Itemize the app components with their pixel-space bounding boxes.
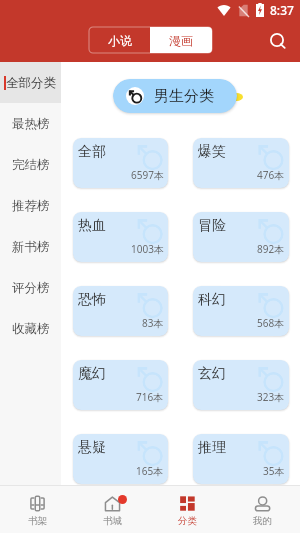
button[interactable]: 科幻 [193, 286, 289, 336]
staticText: 科幻 [198, 291, 226, 309]
staticText: 书城 [103, 515, 122, 527]
button[interactable]: 我的 [225, 496, 300, 533]
staticText: 小说 [108, 33, 132, 48]
staticText: 最热榜 [12, 116, 50, 132]
button[interactable]: Search [264, 27, 290, 53]
button[interactable]: 收藏榜 [0, 308, 61, 349]
staticText: 冒险 [198, 217, 226, 235]
staticText: 35本 [263, 464, 285, 478]
staticText: 1003本 [131, 242, 164, 256]
staticText: 爆笑 [198, 143, 226, 161]
staticText: 165本 [136, 464, 164, 478]
button[interactable]: 漫画 [150, 27, 212, 53]
staticText: 玄幻 [198, 365, 226, 383]
staticText: 892本 [257, 242, 285, 256]
staticText: 魔幻 [78, 365, 106, 383]
staticText: 完结榜 [12, 157, 50, 173]
button[interactable]: 分类 [150, 496, 225, 533]
staticText: 书架 [28, 515, 47, 527]
button[interactable]: 全部 [73, 138, 168, 188]
staticText: 推理 [198, 439, 226, 457]
button[interactable]: 评分榜 [0, 267, 61, 308]
button[interactable]: 书架 [0, 496, 75, 533]
staticText: 恐怖 [78, 291, 106, 309]
staticText: 悬疑 [78, 439, 106, 457]
staticText: 568本 [257, 316, 285, 330]
button[interactable]: 悬疑 [73, 434, 168, 484]
button[interactable]: 完结榜 [0, 144, 61, 185]
button[interactable]: 书城 [75, 496, 150, 533]
button[interactable]: 爆笑 [193, 138, 289, 188]
staticText: 新书榜 [12, 239, 50, 255]
staticText: 热血 [78, 217, 106, 235]
staticText: 476本 [257, 168, 285, 182]
staticText: 推荐榜 [12, 198, 50, 214]
button[interactable]: 恐怖 [73, 286, 168, 336]
staticText: 716本 [136, 390, 164, 404]
button[interactable]: 最热榜 [0, 103, 61, 144]
staticText: 我的 [253, 515, 272, 527]
button[interactable]: 玄幻 [193, 360, 289, 410]
button[interactable]: 冒险 [193, 212, 289, 262]
button[interactable]: 男生分类 [126, 79, 216, 113]
button[interactable]: 推理 [193, 434, 289, 484]
staticText: 漫画 [169, 33, 193, 48]
button[interactable]: 魔幻 [73, 360, 168, 410]
staticText: 收藏榜 [12, 321, 50, 337]
button[interactable]: 推荐榜 [0, 185, 61, 226]
staticText: 男生分类 [154, 87, 214, 106]
staticText: 评分榜 [12, 280, 50, 296]
button[interactable]: 新书榜 [0, 226, 61, 267]
staticText: 分类 [178, 515, 197, 527]
staticText: 83本 [142, 316, 164, 330]
staticText: 323本 [257, 390, 285, 404]
staticText: 全部分类 [6, 75, 56, 91]
staticText: 全部 [78, 143, 106, 161]
button[interactable]: 全部分类 [0, 62, 61, 103]
button[interactable]: 热血 [73, 212, 168, 262]
staticText: 6597本 [131, 168, 164, 182]
staticText: 8:37 [270, 2, 294, 18]
button[interactable]: 小说 [89, 27, 150, 53]
